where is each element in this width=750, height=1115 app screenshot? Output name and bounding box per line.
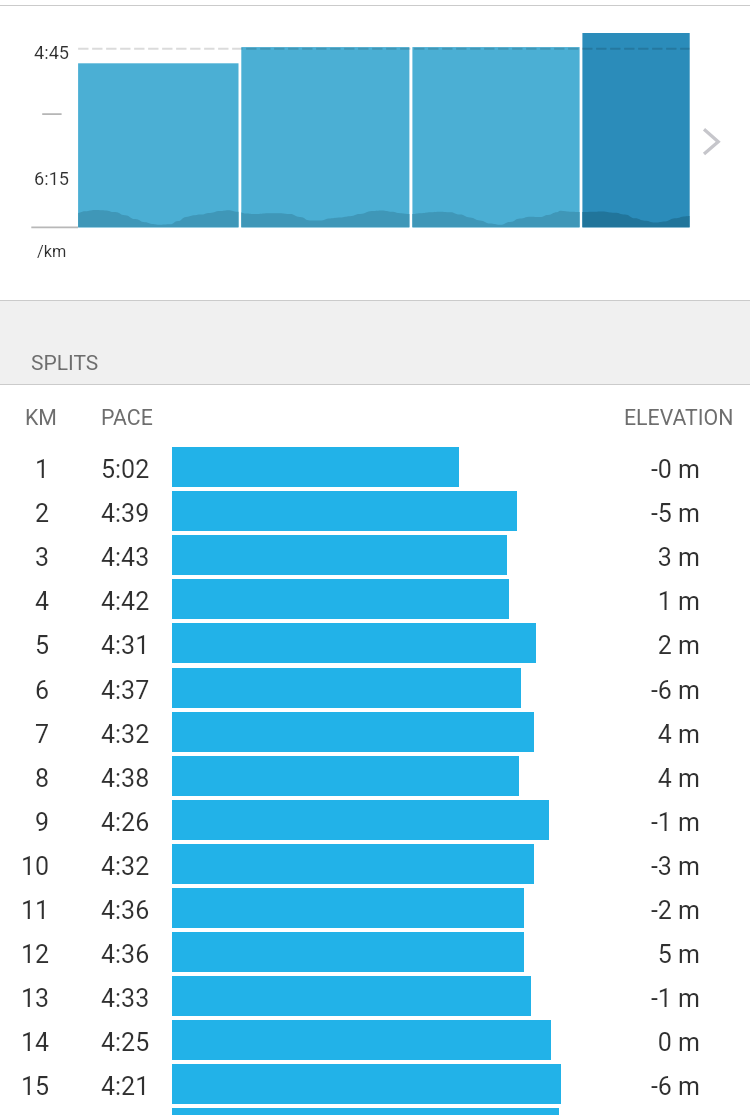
button[interactable]: 6 bbox=[0, 668, 750, 712]
staticText: 4 m bbox=[590, 720, 700, 749]
button[interactable]: 7 bbox=[0, 712, 750, 756]
button[interactable]: 15 bbox=[0, 1064, 750, 1108]
staticText: 7 bbox=[0, 720, 49, 749]
staticText: 4:36 bbox=[101, 940, 150, 969]
staticText: 6 bbox=[0, 676, 49, 705]
staticText: 2 m bbox=[590, 631, 700, 660]
staticText: -6 m bbox=[590, 676, 700, 705]
staticText: 5 bbox=[0, 631, 49, 660]
staticText: ELEVATION bbox=[624, 405, 734, 430]
button[interactable]: 14 bbox=[0, 1020, 750, 1064]
staticText: 4:26 bbox=[101, 808, 150, 837]
staticText: 4:32 bbox=[101, 720, 150, 749]
staticText: 4:43 bbox=[101, 543, 150, 572]
button[interactable]: 1 bbox=[0, 447, 750, 491]
staticText: 4:39 bbox=[101, 499, 150, 528]
staticText: 4:42 bbox=[101, 587, 150, 616]
staticText: 8 bbox=[0, 764, 49, 793]
staticText: 4 bbox=[0, 587, 49, 616]
staticText: 9 bbox=[0, 808, 49, 837]
staticText: -5 m bbox=[590, 499, 700, 528]
button[interactable]: Next bbox=[694, 116, 746, 168]
staticText: 2 bbox=[0, 499, 49, 528]
staticText: 10 bbox=[0, 852, 49, 881]
staticText: 3 bbox=[0, 543, 49, 572]
staticText: 12 bbox=[0, 940, 49, 969]
staticText: 1 m bbox=[590, 587, 700, 616]
staticText: -1 m bbox=[590, 984, 700, 1013]
staticText: SPLITS bbox=[31, 351, 99, 376]
staticText: -1 m bbox=[590, 808, 700, 837]
button[interactable]: 5 bbox=[0, 623, 750, 667]
staticText: 4:25 bbox=[101, 1028, 150, 1057]
staticText: 1 bbox=[0, 455, 49, 484]
staticText: 4:45 bbox=[34, 42, 70, 63]
button[interactable]: 11 bbox=[0, 888, 750, 932]
button[interactable]: 16 bbox=[0, 1108, 750, 1115]
staticText: -0 m bbox=[590, 455, 700, 484]
staticText: 5:02 bbox=[101, 455, 150, 484]
staticText: /km bbox=[37, 242, 67, 261]
staticText: 4:33 bbox=[101, 984, 150, 1013]
staticText: 4:32 bbox=[101, 852, 150, 881]
staticText: 4:36 bbox=[101, 896, 150, 925]
button[interactable]: 13 bbox=[0, 976, 750, 1020]
staticText: 5 m bbox=[590, 940, 700, 969]
button[interactable]: 10 bbox=[0, 844, 750, 888]
staticText: 11 bbox=[0, 896, 49, 925]
button[interactable]: 3 bbox=[0, 535, 750, 579]
staticText: 4 m bbox=[590, 764, 700, 793]
staticText: 4:31 bbox=[101, 631, 150, 660]
staticText: 0 m bbox=[590, 1028, 700, 1057]
button[interactable]: 2 bbox=[0, 491, 750, 535]
staticText: -6 m bbox=[590, 1072, 700, 1101]
button[interactable]: 8 bbox=[0, 756, 750, 800]
staticText: -3 m bbox=[590, 852, 700, 881]
staticText: -2 m bbox=[590, 896, 700, 925]
staticText: KM bbox=[25, 405, 57, 430]
button[interactable]: 9 bbox=[0, 800, 750, 844]
button[interactable]: 12 bbox=[0, 932, 750, 976]
staticText: PACE bbox=[101, 405, 153, 430]
staticText: 4:37 bbox=[101, 676, 150, 705]
staticText: 3 m bbox=[590, 543, 700, 572]
staticText: 15 bbox=[0, 1072, 49, 1101]
staticText: 13 bbox=[0, 984, 49, 1013]
staticText: 6:15 bbox=[34, 168, 70, 189]
button[interactable]: SPLITS bbox=[0, 301, 750, 385]
staticText: 4:38 bbox=[101, 764, 150, 793]
staticText: 14 bbox=[0, 1028, 49, 1057]
staticText: 4:21 bbox=[101, 1072, 150, 1101]
button[interactable]: 4 bbox=[0, 579, 750, 623]
